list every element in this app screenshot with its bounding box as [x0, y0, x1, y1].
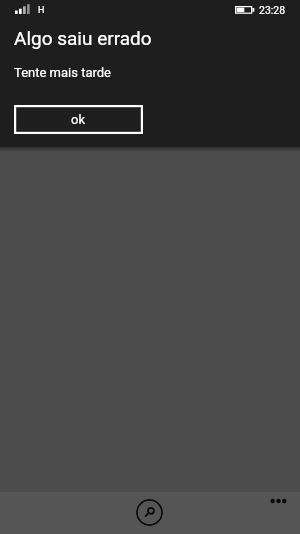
staticText: Tente mais tarde	[14, 65, 111, 80]
staticText: H	[38, 5, 45, 16]
staticText: ok	[71, 112, 86, 127]
staticText: Algo saiu errado	[14, 27, 152, 49]
button[interactable]: ok	[14, 105, 143, 134]
staticText: 23:28	[259, 4, 286, 16]
button[interactable]: Search	[136, 499, 163, 526]
button[interactable]: More options	[264, 493, 293, 509]
